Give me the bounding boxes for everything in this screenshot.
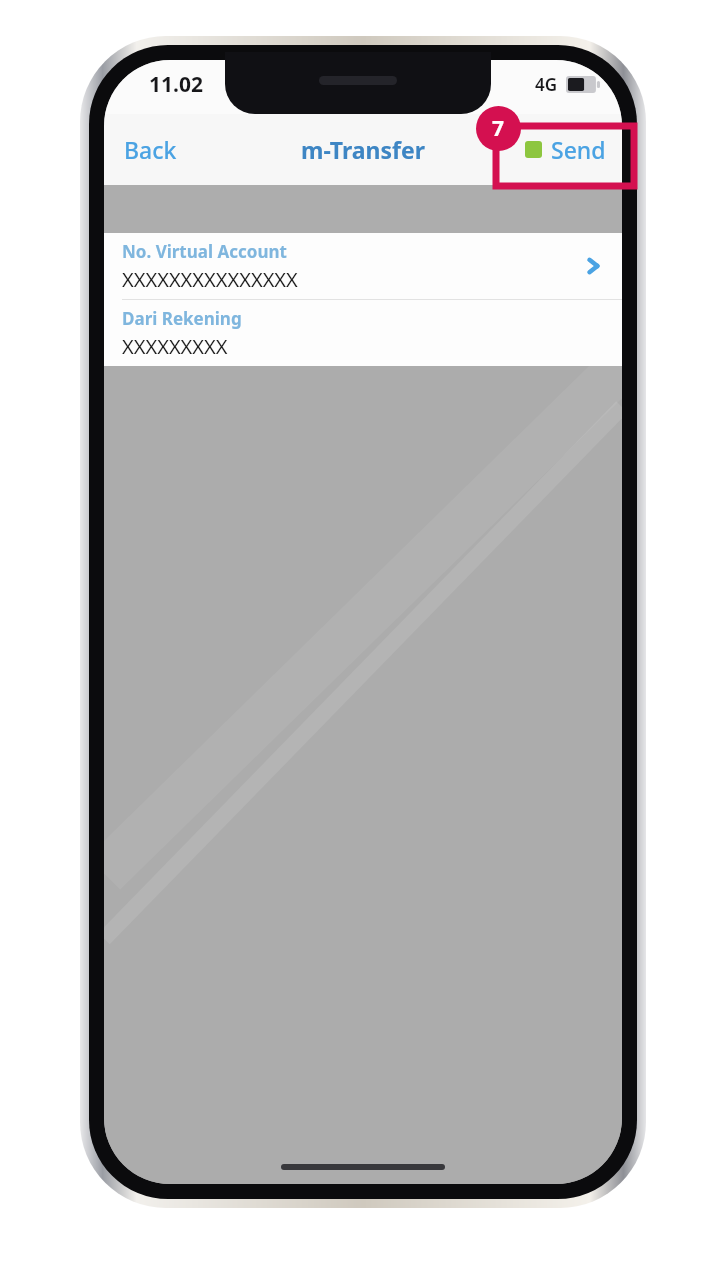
staticText: 4G (535, 73, 558, 96)
other: Battery (566, 76, 600, 93)
staticText: Dari Rekening (122, 307, 242, 330)
staticText: 11.02 (149, 70, 203, 99)
staticText: 7 (492, 114, 505, 143)
other: Open (582, 255, 604, 277)
button[interactable]: No. Virtual Account (104, 233, 622, 299)
staticText: Back (124, 134, 177, 165)
button[interactable]: Send (509, 122, 622, 177)
staticText: No. Virtual Account (122, 240, 287, 263)
button[interactable]: Dari Rekening (104, 300, 622, 366)
staticText: m-Transfer (301, 134, 425, 165)
staticText: XXXXXXXXXXXXXXX (122, 266, 298, 293)
staticText: Send (551, 134, 606, 165)
staticText: XXXXXXXXX (122, 333, 228, 360)
button[interactable]: Back (104, 122, 197, 177)
